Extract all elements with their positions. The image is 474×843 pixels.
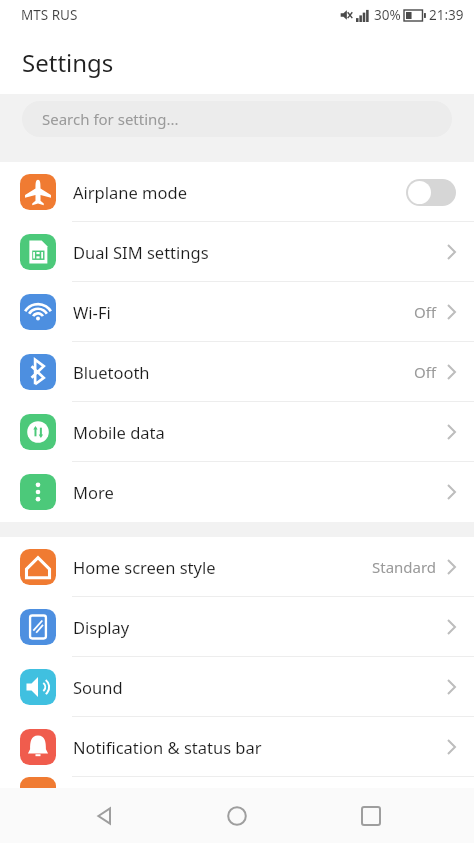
staticText: 30% bbox=[374, 6, 401, 24]
button[interactable]: Display bbox=[0, 597, 474, 657]
button[interactable]: Mobile data bbox=[0, 402, 474, 462]
staticText: Search for setting... bbox=[42, 109, 179, 129]
staticText: Off bbox=[414, 362, 437, 382]
staticText: Standard bbox=[372, 557, 437, 577]
staticText: Notification & status bar bbox=[73, 736, 262, 758]
button[interactable]: Airplane mode bbox=[0, 162, 474, 222]
staticText: Dual SIM settings bbox=[73, 241, 209, 263]
button[interactable]: Back bbox=[74, 788, 134, 843]
staticText: Display bbox=[73, 616, 130, 638]
button[interactable]: Search for setting... bbox=[22, 101, 452, 137]
staticText: Home screen style bbox=[73, 556, 216, 578]
staticText: More bbox=[73, 481, 114, 503]
staticText: Settings bbox=[22, 46, 114, 79]
button[interactable] bbox=[0, 777, 474, 799]
button[interactable]: Notification & status bar bbox=[0, 717, 474, 777]
staticText: Wi-Fi bbox=[73, 301, 111, 323]
button[interactable]: Airplane mode toggle bbox=[406, 179, 456, 206]
staticText: Airplane mode bbox=[73, 181, 187, 203]
button[interactable]: Wi-Fi bbox=[0, 282, 474, 342]
staticText: MTS RUS bbox=[21, 6, 78, 24]
staticText: Mobile data bbox=[73, 421, 165, 443]
button[interactable]: Recents bbox=[341, 788, 401, 843]
button[interactable]: Home screen style bbox=[0, 537, 474, 597]
button[interactable]: Bluetooth bbox=[0, 342, 474, 402]
button[interactable]: More bbox=[0, 462, 474, 522]
staticText: Off bbox=[414, 302, 437, 322]
staticText: Bluetooth bbox=[73, 361, 150, 383]
button[interactable]: Home bbox=[207, 788, 267, 843]
button[interactable]: Sound bbox=[0, 657, 474, 717]
staticText: 21:39 bbox=[429, 6, 464, 24]
button[interactable]: Dual SIM settings bbox=[0, 222, 474, 282]
staticText: Sound bbox=[73, 676, 123, 698]
